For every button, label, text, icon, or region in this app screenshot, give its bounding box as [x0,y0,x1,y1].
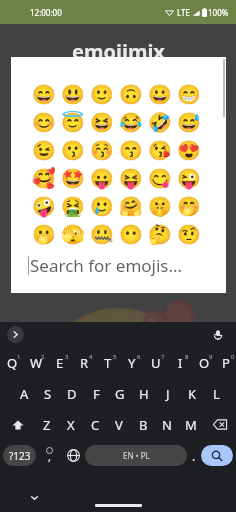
button[interactable]: 🫢 [29,220,58,248]
button[interactable]: 🥲 [87,192,116,220]
button[interactable]: 😇 [58,108,87,136]
staticText: 😇 [61,111,85,133]
button[interactable]: Q [0,347,24,378]
staticText: 9 [209,353,213,361]
button[interactable]: 😃 [58,80,87,108]
staticText: B [139,416,148,434]
button[interactable]: . [187,440,201,471]
button[interactable]: F [84,378,108,409]
button[interactable]: O [192,347,216,378]
staticText: emojimix [72,38,165,65]
button[interactable]: 🥰 [29,164,58,192]
button[interactable]: U [144,347,168,378]
button[interactable]: 😄 [29,80,58,108]
button[interactable]: 😘 [145,136,174,164]
button[interactable]: Y [120,347,144,378]
button[interactable]: S [36,378,60,409]
staticText: 12:00:00 [30,7,62,18]
staticText: 4 [89,353,93,361]
button[interactable]: EN • PL [85,445,187,466]
button[interactable]: 😝 [116,164,145,192]
button[interactable]: B [131,409,155,440]
button[interactable]: R [72,347,96,378]
button[interactable]: 😆 [87,108,116,136]
staticText: 🫢 [32,223,56,245]
button[interactable]: 😙 [116,136,145,164]
button[interactable]: K [180,378,204,409]
staticText: G [115,385,125,403]
button[interactable]: G [108,378,132,409]
button[interactable]: T [96,347,120,378]
staticText: 😄 [32,83,56,105]
staticText: R [80,354,89,372]
button[interactable]: J [156,378,180,409]
button[interactable]: 😂 [116,108,145,136]
button[interactable]: Voice input [210,327,226,343]
button[interactable]: Comma and settings [36,440,61,471]
button[interactable]: E [48,347,72,378]
staticText: ?123 [9,449,31,463]
staticText: Y [128,354,136,372]
button[interactable]: 🤭 [174,192,203,220]
button[interactable]: N [155,409,179,440]
button[interactable]: P [216,347,236,378]
staticText: U [151,354,161,372]
staticText: 🤫 [148,195,172,217]
button[interactable]: 🫣 [58,220,87,248]
staticText: 7 [161,353,165,361]
button[interactable]: 😚 [87,136,116,164]
button[interactable]: Expand suggestions [7,326,24,343]
button[interactable]: Backspace [203,409,236,440]
staticText: H [139,385,149,403]
button[interactable]: M [179,409,203,440]
button[interactable]: Shift [0,409,35,440]
staticText: 😆 [90,111,114,133]
button[interactable]: 🤫 [145,192,174,220]
button[interactable]: 😊 [29,108,58,136]
button[interactable]: C [83,409,107,440]
staticText: 🤭 [177,195,201,217]
staticText: Q [7,354,18,372]
button[interactable]: 🤐 [87,220,116,248]
button[interactable]: A [12,378,36,409]
button[interactable]: ?123 [3,445,36,466]
staticText: 😁 [177,83,201,105]
button[interactable]: X [59,409,83,440]
button[interactable]: 😋 [145,164,174,192]
staticText: 😝 [119,167,143,189]
button[interactable]: Change language [61,440,85,471]
button[interactable]: 😗 [58,136,87,164]
button[interactable]: W [24,347,48,378]
staticText: S [44,385,52,403]
button[interactable]: Hide keyboard [27,490,41,504]
button[interactable]: 😅 [174,108,203,136]
button[interactable]: H [132,378,156,409]
button[interactable]: 🤩 [58,164,87,192]
button[interactable]: 😀 [145,80,174,108]
button[interactable]: 🙂 [87,80,116,108]
button[interactable]: 😁 [174,80,203,108]
button[interactable]: D [60,378,84,409]
button[interactable]: 😍 [174,136,203,164]
button[interactable]: 😉 [29,136,58,164]
button[interactable]: 🤮 [58,192,87,220]
button[interactable]: 🙃 [116,80,145,108]
button[interactable]: 🤪 [29,192,58,220]
button[interactable]: 😛 [87,164,116,192]
button[interactable]: 🤨 [174,220,203,248]
button[interactable]: 🤣 [145,108,174,136]
button[interactable]: 😜 [174,164,203,192]
button[interactable]: Search for emojis... [11,248,226,282]
button[interactable]: V [107,409,131,440]
button[interactable]: 🤔 [145,220,174,248]
staticText: N [162,416,172,434]
button[interactable]: 🤗 [116,192,145,220]
button[interactable]: L [204,378,228,409]
staticText: 🤪 [32,195,56,217]
button[interactable]: Z [35,409,59,440]
button[interactable]: Search [201,445,233,466]
staticText: 8 [185,353,189,361]
button[interactable]: 😶 [116,220,145,248]
button[interactable]: I [168,347,192,378]
staticText: 😜 [177,167,201,189]
